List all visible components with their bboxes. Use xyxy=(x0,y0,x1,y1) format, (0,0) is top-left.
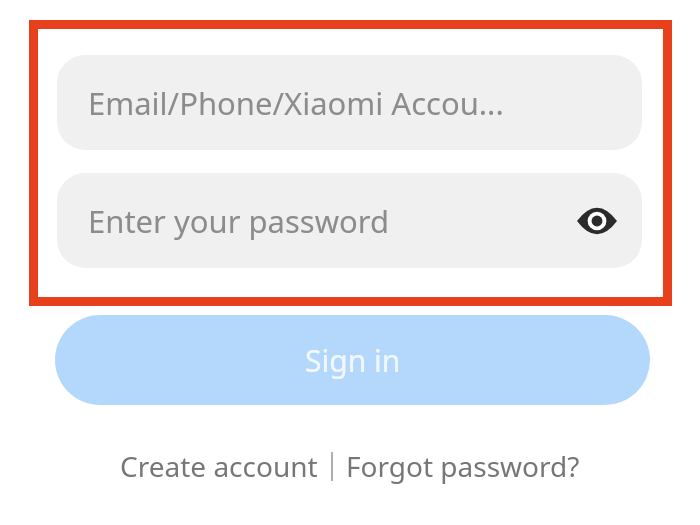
button[interactable]: Enter your password xyxy=(57,173,642,268)
button[interactable]: Sign in xyxy=(55,315,650,405)
staticText: Enter your password xyxy=(88,200,390,242)
button[interactable]: Forgot password? xyxy=(346,444,580,488)
staticText: Create account xyxy=(120,447,318,485)
staticText: Email/Phone/Xiaomi Accou... xyxy=(88,82,504,124)
button[interactable]: Show password xyxy=(574,198,620,244)
staticText: Forgot password? xyxy=(346,447,580,485)
button[interactable]: Email/Phone/Xiaomi Accou... xyxy=(57,55,642,150)
button[interactable]: Create account xyxy=(120,444,318,488)
staticText: Sign in xyxy=(305,340,401,381)
